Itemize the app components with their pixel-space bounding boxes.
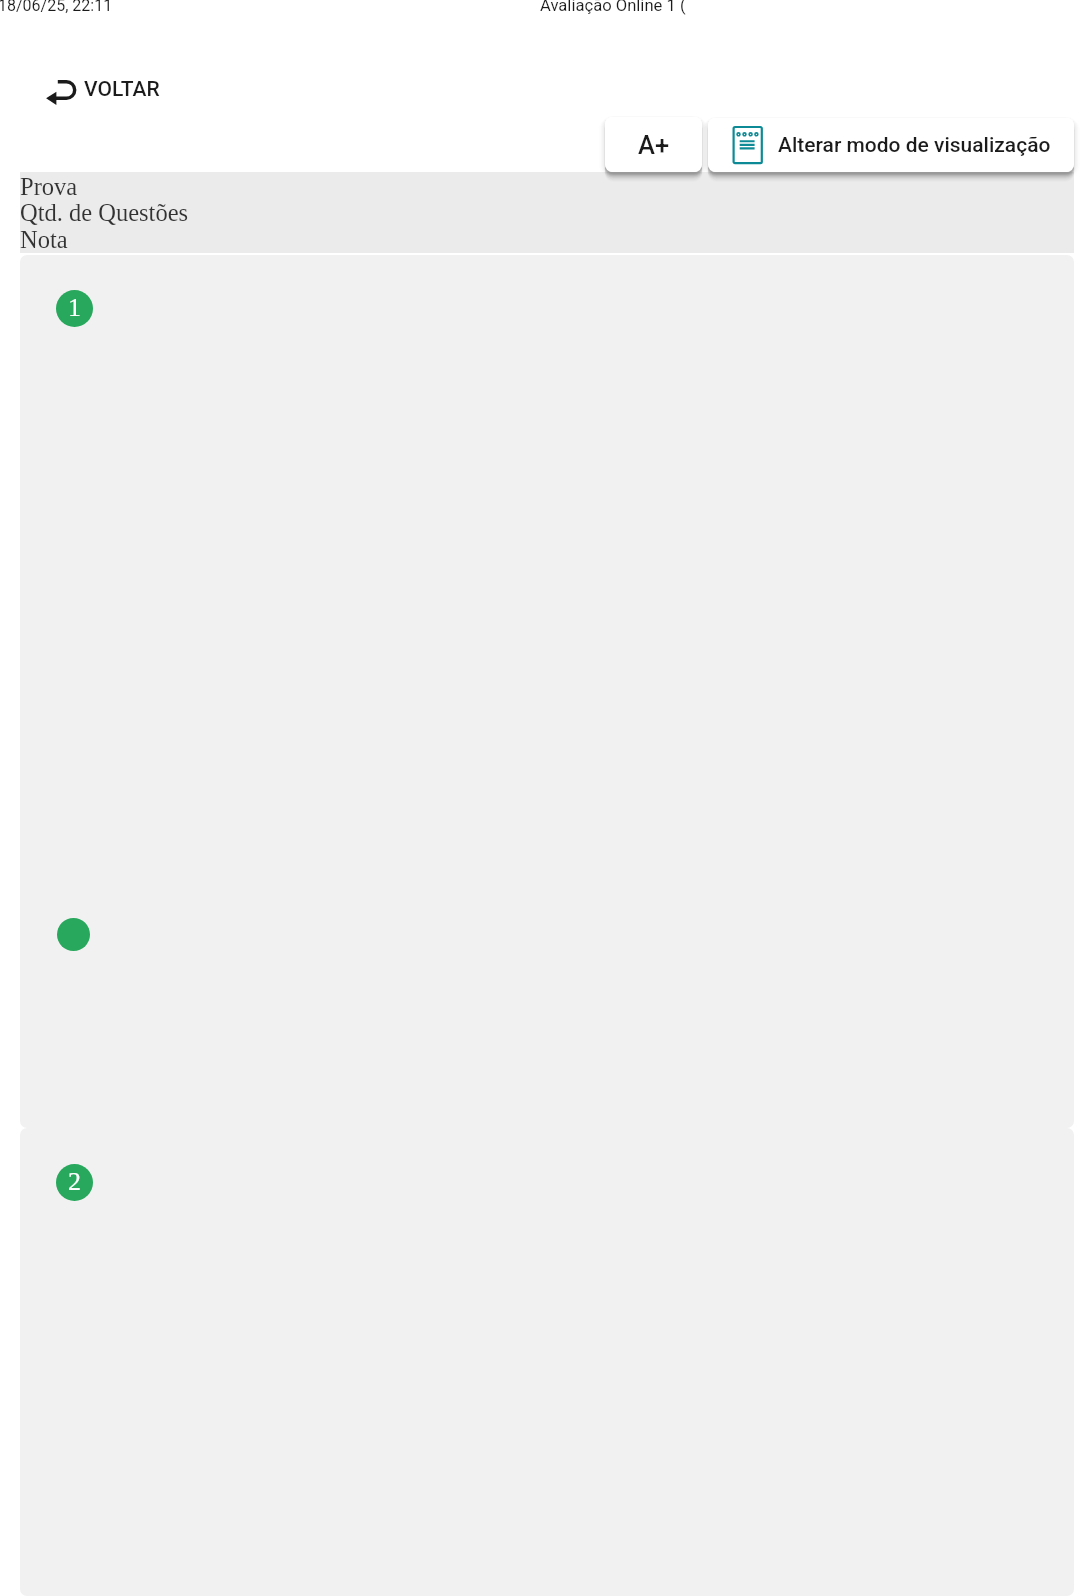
button[interactable]: Questão 2 [20,1128,1074,1596]
button[interactable]: A+ [605,117,702,172]
staticText: VOLTAR [84,77,160,102]
button[interactable]: Alterar modo de visualização [708,118,1074,172]
other: Voltar [46,80,77,106]
button[interactable]: Questão 1 [20,255,1074,1128]
other: Alterar modo de visualização [732,125,764,165]
staticText: Avaliação Online 1 ( [540,0,686,15]
staticText: Prova Qtd. de Questões Nota [20,173,189,254]
staticText: A+ [638,130,670,160]
button[interactable]: Voltar [46,73,160,105]
staticText: 1 [68,293,81,322]
staticText: 2 [68,1167,81,1196]
staticText: Alterar modo de visualização [778,133,1051,158]
staticText: 18/06/25, 22:11 [0,0,113,15]
